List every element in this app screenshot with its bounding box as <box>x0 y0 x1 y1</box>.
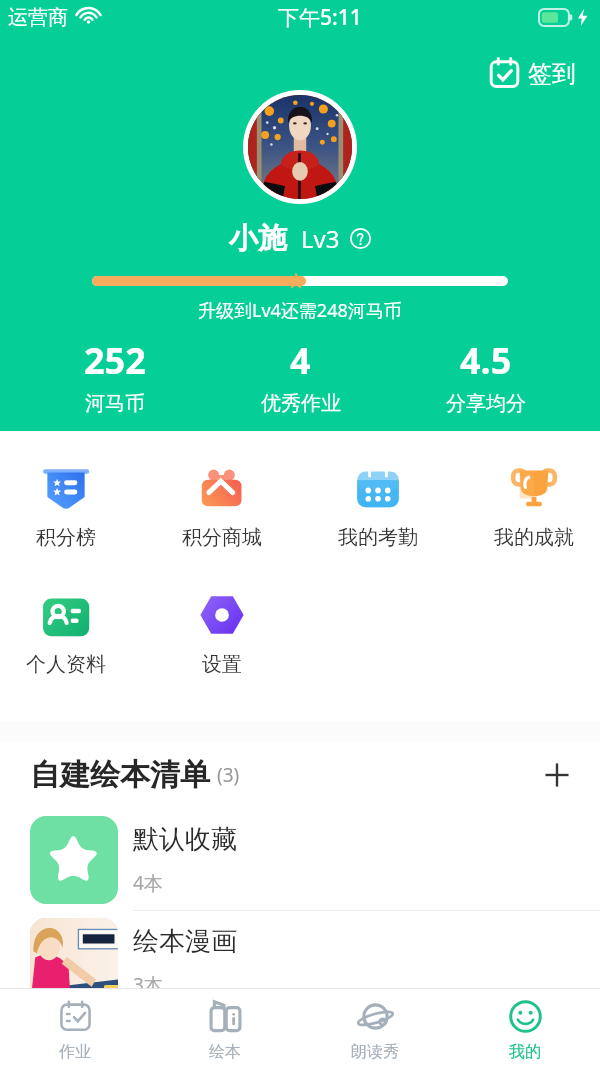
button[interactable]: 绘本 <box>150 989 300 1067</box>
button[interactable]: 作业 <box>0 989 150 1067</box>
staticText: 下午5:11 <box>278 3 362 32</box>
button[interactable]: 我的考勤 <box>328 461 428 550</box>
staticText: 绘本 <box>209 1042 241 1062</box>
button[interactable]: 积分商城 <box>172 461 272 550</box>
button[interactable]: 签到 <box>483 52 582 95</box>
staticText: 自建绘本清单 <box>30 756 210 794</box>
staticText: 4.5 <box>460 336 512 385</box>
button[interactable]: 默认收藏 <box>0 809 600 910</box>
button[interactable]: Add list <box>540 758 574 792</box>
staticText: 小施 <box>229 220 287 257</box>
button[interactable]: Avatar <box>243 90 357 204</box>
staticText: 默认收藏 <box>133 823 237 856</box>
button[interactable]: 朗读秀 <box>300 989 450 1067</box>
button[interactable]: 设置 <box>172 588 272 677</box>
staticText: 运营商 <box>8 5 68 30</box>
staticText: 积分商城 <box>182 525 262 550</box>
staticText: 252 <box>84 336 146 385</box>
staticText: 河马币 <box>85 391 145 416</box>
staticText: 我的成就 <box>494 525 574 550</box>
button[interactable]: 我的成就 <box>484 461 584 550</box>
staticText: 签到 <box>528 59 576 89</box>
staticText: (3) <box>217 762 240 788</box>
staticText: 4 <box>290 336 311 385</box>
button[interactable]: Level help <box>350 228 371 249</box>
staticText: 积分榜 <box>36 525 96 550</box>
button[interactable]: 绘本漫画 <box>0 911 600 1012</box>
staticText: 绘本漫画 <box>133 925 237 958</box>
button[interactable]: 自建绘本清单 <box>0 741 600 809</box>
staticText: 设置 <box>202 652 242 677</box>
staticText: 我的 <box>509 1042 541 1062</box>
staticText: 朗读秀 <box>351 1042 399 1062</box>
staticText: 分享均分 <box>446 391 526 416</box>
staticText: 个人资料 <box>26 652 106 677</box>
button[interactable]: 积分榜 <box>16 461 116 550</box>
staticText: 升级到Lv4还需248河马币 <box>198 298 402 323</box>
staticText: 4本 <box>133 870 163 896</box>
button[interactable]: 我的 <box>450 989 600 1067</box>
staticText: Lv3 <box>301 222 340 255</box>
button[interactable]: 个人资料 <box>16 588 116 677</box>
staticText: 我的考勤 <box>338 525 418 550</box>
staticText: 3本 <box>133 972 163 998</box>
staticText: 作业 <box>59 1042 91 1062</box>
staticText: 优秀作业 <box>261 391 341 416</box>
